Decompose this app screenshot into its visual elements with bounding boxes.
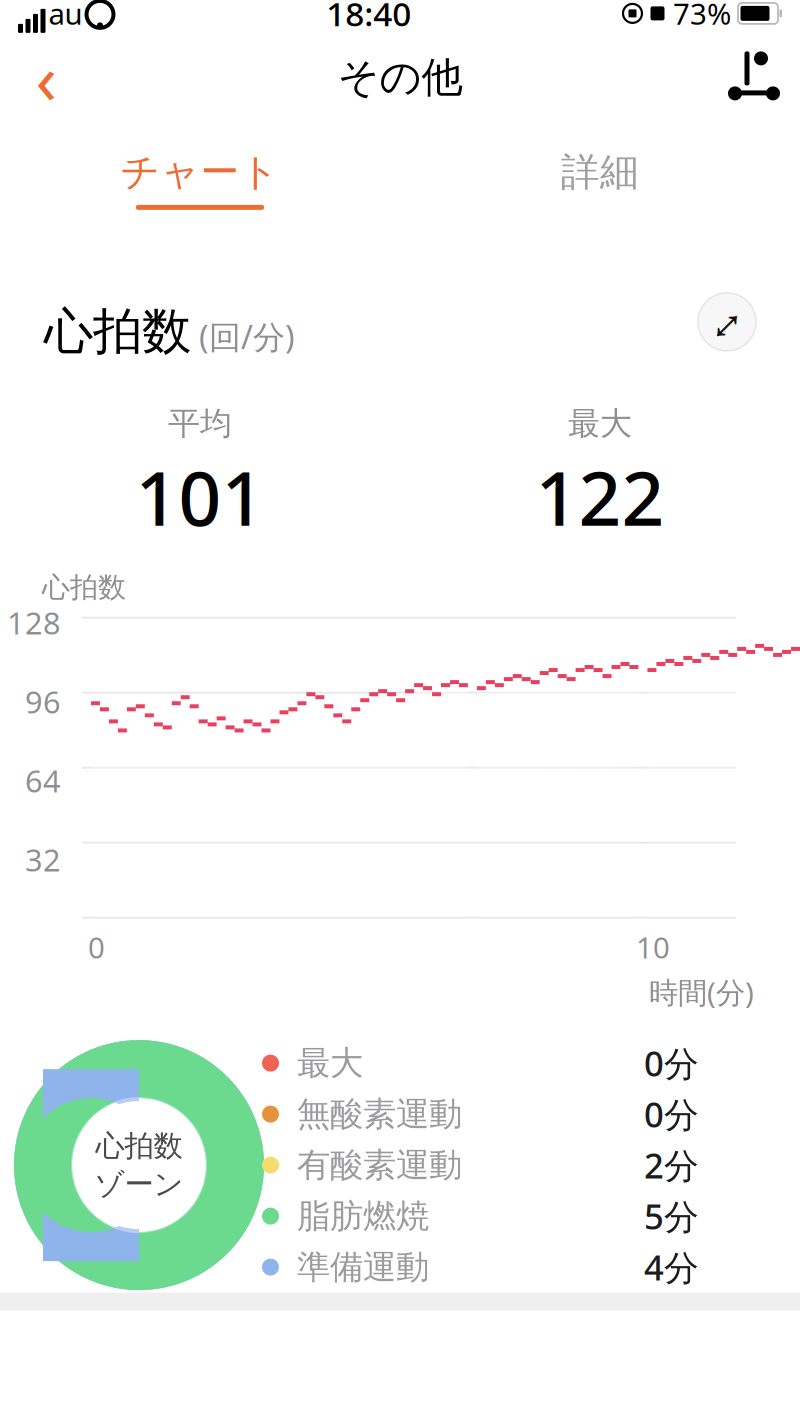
- staticText: 10: [636, 928, 670, 967]
- staticText: 心拍数: [44, 301, 191, 362]
- button[interactable]: 詳細: [400, 138, 800, 220]
- staticText: 101: [135, 447, 264, 546]
- staticText: 32: [25, 839, 61, 880]
- button[interactable]: 共有: [722, 45, 786, 109]
- staticText: 時間(分): [649, 973, 754, 1012]
- staticText: 0: [88, 928, 105, 967]
- staticText: 平均: [168, 404, 232, 443]
- staticText: 有酸素運動: [297, 1145, 462, 1185]
- staticText: ゾーン: [94, 1166, 183, 1202]
- staticText: 0分: [644, 1091, 699, 1137]
- staticText: 無酸素運動: [297, 1094, 462, 1134]
- staticText: 5分: [644, 1193, 699, 1239]
- staticText: その他: [337, 52, 462, 103]
- staticText: 準備運動: [297, 1247, 429, 1287]
- staticText: 122: [535, 447, 664, 546]
- staticText: (回/分): [191, 315, 295, 358]
- staticText: 詳細: [561, 148, 639, 196]
- staticText: 96: [25, 681, 61, 722]
- button[interactable]: チャート: [0, 138, 400, 220]
- staticText: 18:40: [326, 0, 411, 36]
- staticText: ⤢: [712, 282, 742, 362]
- staticText: 最大: [297, 1043, 363, 1083]
- staticText: 最大: [568, 404, 632, 443]
- staticText: 73%: [673, 0, 731, 33]
- staticText: 心拍数: [95, 1128, 182, 1164]
- staticText: au: [48, 0, 82, 33]
- staticText: 脂肪燃焼: [297, 1196, 429, 1236]
- button[interactable]: 拡大: [698, 282, 756, 362]
- staticText: 2分: [644, 1142, 699, 1188]
- staticText: 64: [25, 760, 61, 801]
- button[interactable]: 戻る: [14, 45, 78, 109]
- staticText: 128: [7, 602, 61, 643]
- staticText: 0分: [644, 1040, 699, 1086]
- staticText: チャート: [120, 148, 279, 196]
- staticText: 心拍数: [42, 570, 126, 605]
- staticText: ‹: [35, 31, 56, 123]
- staticText: 4分: [644, 1244, 699, 1290]
